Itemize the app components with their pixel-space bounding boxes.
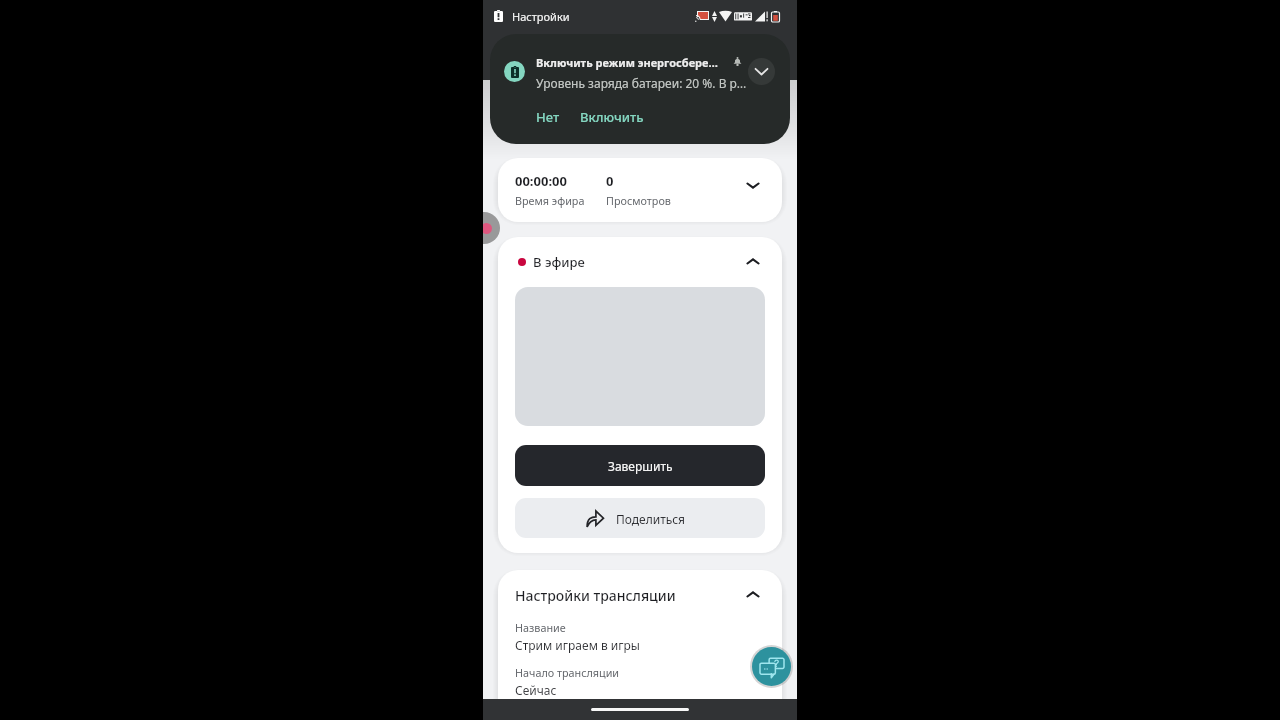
button[interactable]: 00:00:00 [498, 158, 782, 222]
staticText: В эфире [533, 253, 585, 271]
staticText: Нет [536, 108, 560, 126]
staticText: Поделиться [616, 511, 686, 527]
staticText: Время эфира [515, 193, 585, 208]
staticText: Начало трансляции [515, 665, 620, 680]
staticText: Включить [580, 108, 644, 126]
button[interactable]: Развернуть уведомление [748, 58, 775, 85]
staticText: Настройки [512, 9, 570, 24]
button[interactable]: Включить [578, 104, 646, 130]
button[interactable]: Поделиться [515, 498, 765, 538]
button[interactable]: Настройки трансляции [498, 570, 782, 620]
staticText: Стрим играем в игры [515, 637, 640, 653]
staticText: 0 [606, 172, 614, 190]
button[interactable]: Нет [534, 104, 562, 130]
staticText: Название [515, 620, 566, 635]
staticText: Уровень заряда батареи: 20 %. В р… [536, 75, 747, 91]
button[interactable]: Помощь и поддержка [750, 645, 793, 688]
staticText: Завершить [608, 458, 673, 474]
staticText: Просмотров [606, 193, 671, 208]
staticText: Сейчас [515, 682, 557, 698]
button[interactable]: В эфире [498, 237, 782, 287]
staticText: Настройки трансляции [515, 586, 676, 605]
staticText: Включить режим энергосбере… [536, 55, 718, 70]
button[interactable]: Завершить [515, 445, 765, 486]
staticText: 00:00:00 [515, 172, 567, 190]
button[interactable]: Включить режим энергосбере… [490, 34, 790, 144]
button[interactable]: Запись экрана [483, 212, 500, 244]
